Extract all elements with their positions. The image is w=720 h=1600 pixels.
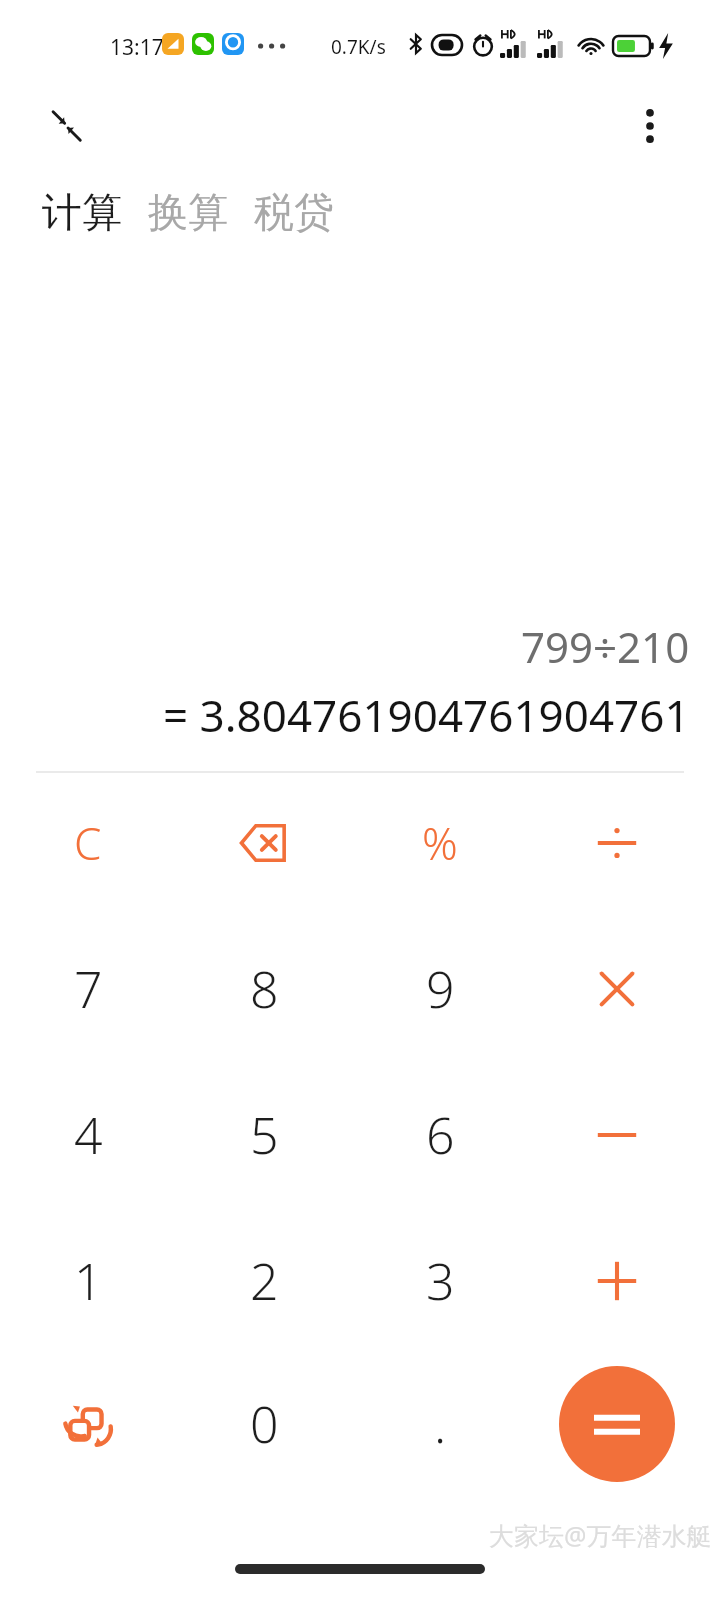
staticText: 6 — [426, 1101, 455, 1169]
button[interactable]: 3 — [365, 1216, 515, 1346]
button[interactable]: 1 — [13, 1216, 163, 1346]
button[interactable]: Plus — [542, 1216, 692, 1346]
button[interactable]: Backspace — [189, 778, 339, 908]
button[interactable]: 4 — [13, 1070, 163, 1200]
button[interactable]: Collapse — [38, 98, 94, 154]
staticText: . — [434, 1390, 447, 1458]
button[interactable]: 计算 — [40, 183, 124, 241]
staticText: = 3.804761904761904761 — [163, 685, 690, 745]
button[interactable]: 8 — [189, 924, 339, 1054]
staticText: 0 — [250, 1390, 279, 1458]
button[interactable]: More options — [620, 96, 680, 156]
staticText: 799÷210 — [521, 618, 690, 675]
staticText: 税贷 — [254, 187, 334, 237]
staticText: 大家坛@万年潜水艇 — [489, 1518, 712, 1552]
button[interactable]: 6 — [365, 1070, 515, 1200]
staticText: 5 — [250, 1101, 279, 1169]
button[interactable]: Minus — [542, 1070, 692, 1200]
button[interactable]: Multiply — [542, 924, 692, 1054]
button[interactable]: C — [13, 778, 163, 908]
button[interactable]: 税贷 — [252, 183, 336, 241]
staticText: 计算 — [42, 187, 122, 237]
staticText: 1 — [74, 1247, 103, 1315]
button[interactable]: . — [365, 1359, 515, 1489]
staticText: 9 — [426, 955, 455, 1023]
button[interactable]: Divide — [542, 778, 692, 908]
button[interactable]: 换算 — [146, 183, 230, 241]
button[interactable]: 2 — [189, 1216, 339, 1346]
staticText: 3 — [426, 1247, 455, 1315]
staticText: 13:17 — [110, 33, 164, 62]
staticText: % — [422, 813, 458, 873]
button[interactable]: 7 — [13, 924, 163, 1054]
staticText: 0.7K/s — [331, 34, 386, 60]
button[interactable]: 5 — [189, 1070, 339, 1200]
button[interactable]: 9 — [365, 924, 515, 1054]
staticText: 7 — [74, 955, 103, 1023]
button[interactable]: % — [365, 778, 515, 908]
staticText: C — [74, 813, 102, 873]
staticText: 8 — [250, 955, 279, 1023]
button[interactable]: Equals — [559, 1366, 675, 1482]
staticText: 换算 — [148, 187, 228, 237]
button[interactable]: 0 — [189, 1359, 339, 1489]
staticText: 4 — [74, 1101, 103, 1169]
staticText: 2 — [250, 1247, 279, 1315]
button[interactable]: Unit convert — [13, 1359, 163, 1489]
